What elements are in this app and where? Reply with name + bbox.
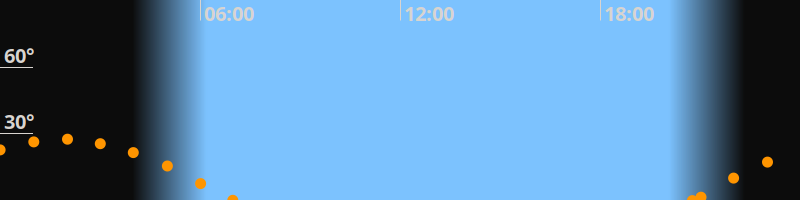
staticText: 12:00 bbox=[404, 0, 454, 27]
staticText: 06:00 bbox=[204, 0, 254, 27]
staticText: 30° bbox=[4, 108, 34, 135]
staticText: 60° bbox=[4, 42, 34, 69]
staticText: 18:00 bbox=[604, 0, 654, 27]
